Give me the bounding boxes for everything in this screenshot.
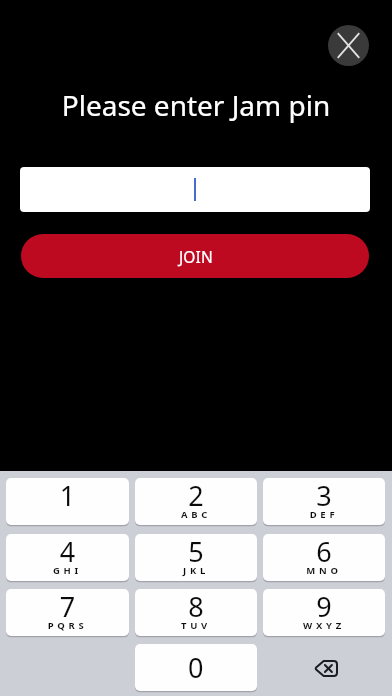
button[interactable]: 6 xyxy=(263,534,385,581)
button[interactable]: 9 xyxy=(263,589,385,636)
button[interactable]: Close xyxy=(328,25,369,66)
staticText: GHI xyxy=(6,564,129,577)
staticText: 6 xyxy=(263,534,385,570)
staticText: JOIN xyxy=(179,246,213,267)
staticText: TUV xyxy=(135,619,257,632)
button[interactable]: 8 xyxy=(135,589,257,636)
staticText: 9 xyxy=(263,589,385,625)
button[interactable]: Backspace xyxy=(263,644,385,691)
staticText: ABC xyxy=(135,508,257,521)
staticText: 4 xyxy=(6,534,129,570)
staticText: WXYZ xyxy=(263,619,385,632)
staticText: JKL xyxy=(135,564,257,577)
button[interactable]: 4 xyxy=(6,534,129,581)
staticText: 7 xyxy=(6,589,129,625)
staticText: 3 xyxy=(263,478,385,514)
button[interactable]: JOIN xyxy=(21,234,369,278)
staticText: PQRS xyxy=(6,619,129,632)
button[interactable]: 7 xyxy=(6,589,129,636)
staticText: DEF xyxy=(263,508,385,521)
button[interactable]: 2 xyxy=(135,478,257,525)
staticText: 1 xyxy=(6,478,129,514)
staticText: MNO xyxy=(263,564,385,577)
button[interactable]: 0 xyxy=(135,644,257,691)
staticText: 8 xyxy=(135,589,257,625)
staticText: 0 xyxy=(188,649,204,686)
staticText: 2 xyxy=(135,478,257,514)
button[interactable]: 3 xyxy=(263,478,385,525)
button[interactable] xyxy=(20,167,370,212)
staticText: 5 xyxy=(135,534,257,570)
staticText: Please enter Jam pin xyxy=(0,86,392,124)
button[interactable]: 5 xyxy=(135,534,257,581)
button[interactable]: 1 xyxy=(6,478,129,525)
